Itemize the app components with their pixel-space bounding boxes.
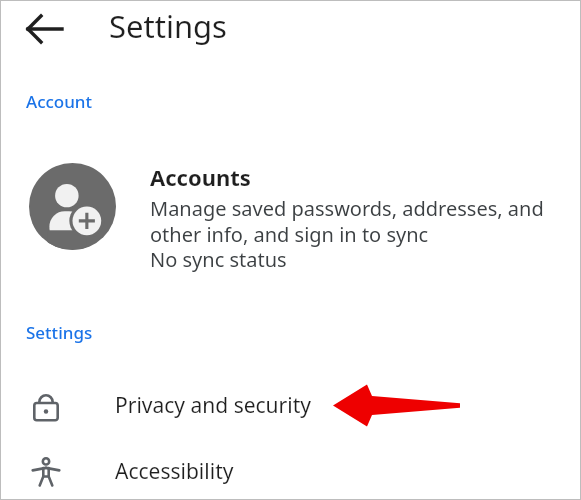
button[interactable]: Accessibility (0, 443, 581, 500)
staticText: Manage saved passwords, addresses, and o… (150, 195, 544, 272)
staticText: Accounts (150, 162, 251, 192)
button[interactable]: Privacy and security (0, 373, 581, 438)
staticText: Accessibility (115, 457, 234, 486)
staticText: Account (26, 90, 93, 113)
button[interactable]: Back (20, 4, 70, 54)
staticText: Settings (26, 321, 93, 344)
staticText: Privacy and security (115, 391, 311, 420)
button[interactable]: Accounts (0, 152, 581, 274)
staticText: Settings (109, 5, 227, 47)
